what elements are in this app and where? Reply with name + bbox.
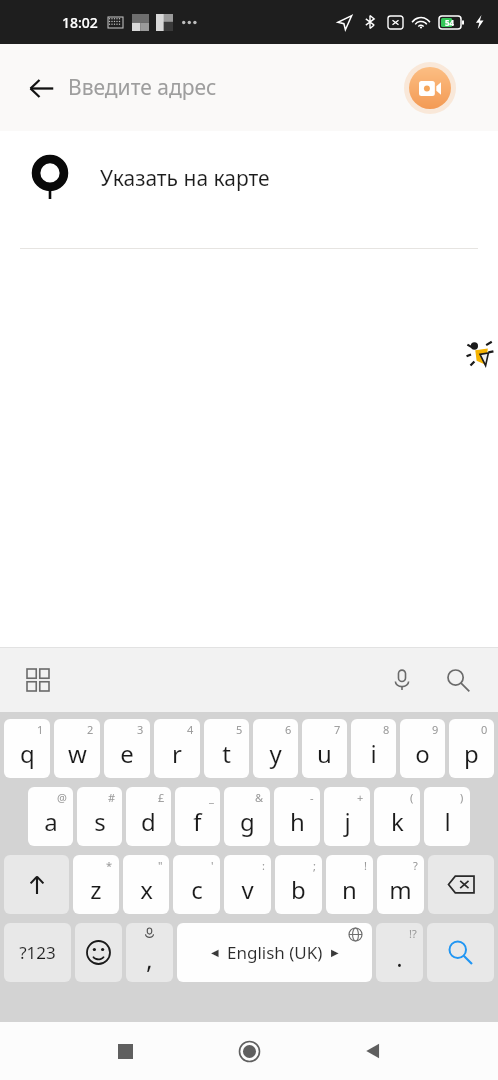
button[interactable]: @ bbox=[28, 787, 73, 846]
staticText: ( bbox=[410, 790, 414, 805]
staticText: s bbox=[94, 805, 106, 838]
button[interactable]: & bbox=[224, 787, 270, 846]
button[interactable]: " bbox=[123, 855, 169, 914]
button[interactable]: 1 bbox=[4, 719, 50, 778]
button[interactable]: !? bbox=[376, 923, 423, 982]
staticText: f bbox=[193, 805, 202, 838]
staticText: ◀ bbox=[211, 947, 219, 959]
staticText: o bbox=[415, 737, 430, 770]
staticText: . bbox=[396, 941, 403, 974]
button[interactable]: 3 bbox=[104, 719, 150, 778]
button[interactable]: , bbox=[126, 923, 173, 982]
button[interactable]: £ bbox=[126, 787, 171, 846]
staticText: a bbox=[44, 805, 58, 838]
staticText: m bbox=[389, 873, 412, 906]
staticText: c bbox=[191, 873, 203, 906]
staticText: 2 bbox=[87, 722, 94, 737]
button[interactable]: 2 bbox=[54, 719, 100, 778]
staticText: 8 bbox=[383, 722, 390, 737]
button[interactable]: Recents bbox=[100, 1026, 150, 1076]
staticText: Введите адрес bbox=[68, 73, 217, 102]
button[interactable]: Backspace bbox=[428, 855, 494, 914]
button[interactable]: ; bbox=[275, 855, 322, 914]
staticText: i bbox=[370, 737, 377, 770]
staticText: Указать на карте bbox=[100, 164, 270, 193]
button[interactable]: Указать на карте bbox=[0, 131, 498, 226]
button[interactable]: ?123 bbox=[4, 923, 71, 982]
staticText: ' bbox=[211, 858, 214, 873]
staticText: 3 bbox=[137, 722, 144, 737]
button[interactable]: 9 bbox=[400, 719, 445, 778]
button[interactable]: 4 bbox=[154, 719, 200, 778]
button[interactable]: ) bbox=[424, 787, 470, 846]
button[interactable]: ' bbox=[173, 855, 220, 914]
staticText: w bbox=[68, 737, 87, 770]
staticText: ?123 bbox=[19, 941, 56, 964]
button[interactable]: * bbox=[73, 855, 119, 914]
staticText: u bbox=[317, 737, 332, 770]
staticText: r bbox=[172, 737, 182, 770]
staticText: t bbox=[222, 737, 231, 770]
button[interactable]: 7 bbox=[302, 719, 347, 778]
staticText: z bbox=[90, 873, 102, 906]
button[interactable]: - bbox=[274, 787, 320, 846]
button[interactable]: ! bbox=[326, 855, 373, 914]
button[interactable]: Shift bbox=[4, 855, 69, 914]
button[interactable]: ? bbox=[377, 855, 424, 914]
staticText: 6 bbox=[285, 722, 292, 737]
button[interactable]: Video call bbox=[404, 62, 456, 114]
button[interactable]: 0 bbox=[449, 719, 494, 778]
button[interactable]: ◀ bbox=[177, 923, 372, 982]
staticText: 1 bbox=[37, 722, 44, 737]
staticText: 54 bbox=[445, 17, 455, 28]
staticText: 0 bbox=[481, 722, 488, 737]
button[interactable]: ( bbox=[374, 787, 420, 846]
staticText: & bbox=[255, 790, 264, 805]
button[interactable]: : bbox=[224, 855, 271, 914]
staticText: n bbox=[342, 873, 357, 906]
staticText: l bbox=[444, 805, 451, 838]
staticText: # bbox=[108, 790, 116, 805]
button[interactable]: Search bbox=[436, 658, 480, 702]
staticText: v bbox=[241, 873, 254, 906]
staticText: - bbox=[310, 790, 314, 805]
staticText: x bbox=[140, 873, 153, 906]
staticText: English (UK) bbox=[227, 941, 323, 964]
staticText: 5 bbox=[236, 722, 243, 737]
button[interactable]: 6 bbox=[253, 719, 298, 778]
button[interactable]: Clipboard bbox=[18, 660, 58, 700]
button[interactable]: 8 bbox=[351, 719, 396, 778]
staticText: ; bbox=[313, 858, 316, 873]
staticText: ! bbox=[364, 858, 367, 873]
staticText: !? bbox=[409, 926, 417, 941]
button[interactable]: Введите адрес bbox=[68, 44, 404, 131]
button[interactable]: Search bbox=[427, 923, 494, 982]
staticText: 7 bbox=[334, 722, 341, 737]
staticText: b bbox=[291, 873, 306, 906]
staticText: ▶ bbox=[331, 947, 339, 959]
staticText: j bbox=[344, 805, 351, 838]
staticText: y bbox=[269, 737, 282, 770]
staticText: £ bbox=[158, 790, 165, 805]
button[interactable]: Home bbox=[224, 1026, 274, 1076]
button[interactable]: Emoji bbox=[75, 923, 122, 982]
staticText: p bbox=[464, 737, 479, 770]
staticText: @ bbox=[57, 790, 67, 805]
button[interactable]: + bbox=[324, 787, 370, 846]
button[interactable]: Back bbox=[348, 1026, 398, 1076]
staticText: k bbox=[391, 805, 404, 838]
staticText: ? bbox=[413, 858, 418, 873]
button[interactable]: _ bbox=[175, 787, 220, 846]
staticText: * bbox=[106, 858, 113, 873]
staticText: _ bbox=[209, 790, 214, 805]
button[interactable]: Voice input bbox=[380, 658, 424, 702]
button[interactable]: 5 bbox=[204, 719, 249, 778]
button[interactable]: # bbox=[77, 787, 122, 846]
staticText: 9 bbox=[432, 722, 439, 737]
staticText: e bbox=[120, 737, 134, 770]
staticText: , bbox=[146, 942, 153, 976]
staticText: : bbox=[262, 858, 265, 873]
staticText: h bbox=[290, 805, 305, 838]
button[interactable]: Back bbox=[14, 61, 68, 115]
staticText: q bbox=[20, 737, 35, 770]
